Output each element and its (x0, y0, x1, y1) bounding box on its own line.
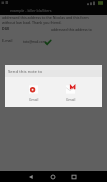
staticText: without low load. Thank you friend. (2, 20, 62, 25)
staticText: addressed this address to (51, 27, 92, 32)
staticText: toto@mail.com (23, 40, 46, 44)
button[interactable]: Gmail (52, 85, 89, 102)
staticText: addressed this address to the Nicolas an… (2, 15, 89, 20)
staticText: Gmail (29, 97, 39, 102)
staticText: Gmail (66, 97, 76, 102)
button[interactable]: Recent apps (67, 172, 81, 182)
button[interactable]: Home (46, 172, 60, 182)
button[interactable]: Gmail (15, 85, 52, 102)
button[interactable]: Back (24, 172, 38, 182)
staticText: Send this note to (8, 68, 43, 74)
staticText: E-mail (2, 38, 13, 43)
staticText: example - killer bla/liters (10, 8, 52, 13)
staticText: DUE (2, 26, 10, 31)
